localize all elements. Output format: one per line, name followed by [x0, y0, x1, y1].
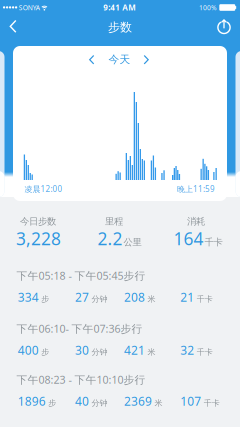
- staticText: 凌晨12:00: [24, 184, 62, 194]
- staticText: 334: [18, 289, 39, 305]
- staticText: 千卡: [197, 294, 213, 304]
- staticText: 1896: [18, 393, 46, 409]
- staticText: 100%: [199, 3, 217, 12]
- staticText: 步: [48, 398, 56, 408]
- staticText: 164: [173, 227, 203, 250]
- staticText: 千卡: [204, 398, 220, 408]
- button[interactable]: Back: [1, 16, 25, 36]
- staticText: 421: [124, 342, 145, 358]
- staticText: 米: [147, 294, 155, 304]
- button[interactable]: Share: [212, 14, 236, 38]
- staticText: 30: [75, 342, 89, 358]
- staticText: SONYA: [19, 3, 40, 12]
- staticText: 107: [180, 393, 201, 409]
- staticText: 步: [41, 294, 49, 304]
- staticText: 千卡: [204, 236, 222, 248]
- staticText: 400: [18, 342, 39, 358]
- staticText: 晚上11:59: [177, 184, 215, 194]
- staticText: 米: [147, 347, 155, 357]
- staticText: 9:41 AM: [103, 2, 136, 13]
- staticText: 分钟: [91, 347, 107, 357]
- staticText: 里程: [105, 216, 123, 227]
- button[interactable]: Previous day: [85, 52, 99, 68]
- staticText: 消耗: [187, 216, 205, 227]
- staticText: 2369: [124, 393, 152, 409]
- staticText: 今天: [109, 53, 131, 66]
- staticText: 步数: [108, 20, 132, 35]
- staticText: 下午08:23 - 下午10:10步行: [16, 372, 145, 387]
- staticText: 32: [180, 342, 194, 358]
- staticText: 今日步数: [20, 216, 56, 227]
- staticText: 40: [75, 393, 89, 409]
- staticText: 公里: [123, 236, 141, 248]
- staticText: 21: [180, 289, 194, 305]
- staticText: 27: [75, 289, 89, 305]
- staticText: 米: [154, 398, 162, 408]
- staticText: 下午06:10- 下午07:36步行: [16, 321, 142, 336]
- button[interactable]: Next day: [139, 52, 153, 68]
- staticText: 千卡: [197, 347, 213, 357]
- staticText: 分钟: [91, 294, 107, 304]
- staticText: 下午05:18 - 下午05:45步行: [16, 268, 145, 283]
- staticText: 3,228: [16, 227, 61, 250]
- staticText: 208: [124, 289, 145, 305]
- staticText: 2.2: [97, 227, 122, 250]
- staticText: 步: [41, 347, 49, 357]
- staticText: 分钟: [91, 398, 107, 408]
